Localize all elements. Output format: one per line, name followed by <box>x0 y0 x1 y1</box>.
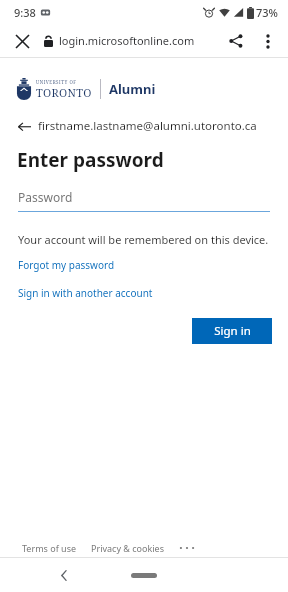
button[interactable]: More <box>177 540 197 556</box>
staticText: Enter password <box>17 147 164 173</box>
staticText: Alumni <box>109 80 156 98</box>
button[interactable]: login.microsoftonline.com <box>44 33 195 48</box>
staticText: 9:38 <box>14 5 36 20</box>
staticText: Password <box>18 189 73 205</box>
button[interactable]: Home <box>131 573 157 578</box>
button[interactable]: Privacy & cookies <box>91 542 165 554</box>
button[interactable]: Back <box>50 561 78 589</box>
staticText: Terms of use <box>22 542 77 554</box>
button[interactable]: Sign in with another account <box>18 286 153 300</box>
staticText: Your account will be remembered on this … <box>18 232 269 247</box>
staticText: Sign in with another account <box>18 286 153 300</box>
button[interactable]: Close <box>6 25 38 57</box>
button[interactable]: Terms of use <box>22 542 77 554</box>
staticText: Privacy & cookies <box>91 542 165 554</box>
button[interactable]: Share <box>220 25 252 57</box>
staticText: firstname.lastname@alumni.utoronto.ca <box>38 118 257 134</box>
button[interactable]: More options <box>252 25 284 57</box>
button[interactable]: firstname.lastname@alumni.utoronto.ca <box>18 118 288 134</box>
button[interactable]: Sign in <box>192 318 272 344</box>
staticText: TORONTO <box>36 85 92 100</box>
staticText: Sign in <box>214 323 251 339</box>
staticText: 73% <box>256 5 278 20</box>
staticText: login.microsoftonline.com <box>59 33 195 48</box>
staticText: UNIVERSITY OF <box>36 79 77 85</box>
staticText: Forgot my password <box>18 258 115 272</box>
button[interactable]: Password <box>18 189 270 212</box>
button[interactable]: Forgot my password <box>18 258 115 272</box>
